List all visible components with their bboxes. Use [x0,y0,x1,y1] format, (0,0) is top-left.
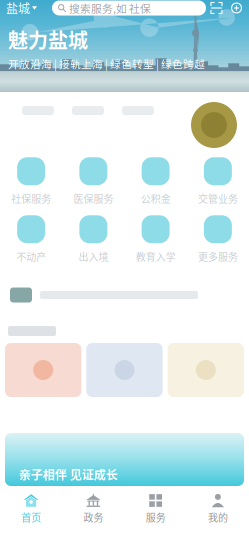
staticText: 不动产 [16,249,46,264]
button[interactable]: 公积金 [124,159,187,204]
staticText: 我的 [208,510,228,524]
button[interactable]: 社保服务 [0,159,62,204]
staticText: 政务 [83,510,103,524]
staticText: 搜索服务,如 社保 [69,0,151,16]
button[interactable]: 出入境 [62,217,124,262]
staticText: 服务 [146,510,166,524]
button[interactable] [168,343,244,397]
button[interactable]: 扫一扫 [206,0,227,16]
button[interactable]: 切换城市 [0,0,52,16]
button[interactable]: 活动 [191,102,237,148]
staticText: 教育入学 [136,249,176,264]
button[interactable] [5,343,81,397]
staticText: 首页 [21,510,41,524]
button[interactable]: 政务 [62,488,124,534]
button[interactable]: 更多服务 [187,217,249,262]
staticText: 更多服务 [198,249,238,264]
staticText: 魅力盐城 [8,25,88,54]
staticText: 交管业务 [198,191,238,206]
button[interactable]: 交管业务 [187,159,249,204]
button[interactable]: 不动产 [0,217,62,262]
button[interactable]: 教育入学 [124,217,187,262]
staticText: 社保服务 [11,191,51,206]
button[interactable]: 首页 [0,488,62,534]
button[interactable]: 搜索服务,如 社保 [52,0,206,15]
staticText: 亲子相伴 见证成长 [19,466,118,483]
button[interactable]: 我的 [187,488,249,534]
staticText: 盐城 [6,0,30,17]
button[interactable] [86,343,163,397]
button[interactable]: 亲子相伴 见证成长 [0,433,249,488]
button[interactable]: 服务 [124,488,187,534]
staticText: 公积金 [141,191,171,206]
button[interactable]: 添加 [227,0,246,16]
staticText: 开放沿海 | 接轨上海 | 绿色转型 | 绿色跨越 [8,56,205,71]
button[interactable]: 医保服务 [62,159,124,204]
button[interactable]: 通知 [0,278,249,312]
staticText: 医保服务 [73,191,113,206]
staticText: 出入境 [78,249,108,264]
